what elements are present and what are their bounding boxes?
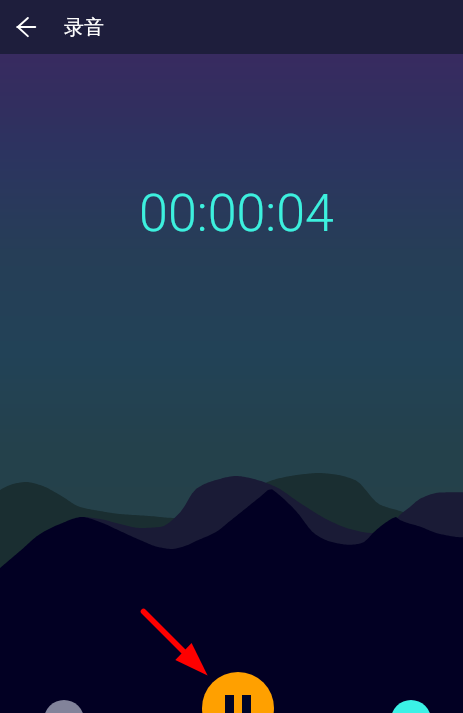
- button[interactable]: Finish recording: [391, 700, 431, 713]
- staticText: 00:00:04: [5, 183, 463, 244]
- button[interactable]: Pause recording: [202, 672, 274, 713]
- staticText: 录音: [64, 15, 104, 40]
- button[interactable]: Back: [0, 0, 53, 54]
- button[interactable]: Delete recording: [44, 700, 84, 713]
